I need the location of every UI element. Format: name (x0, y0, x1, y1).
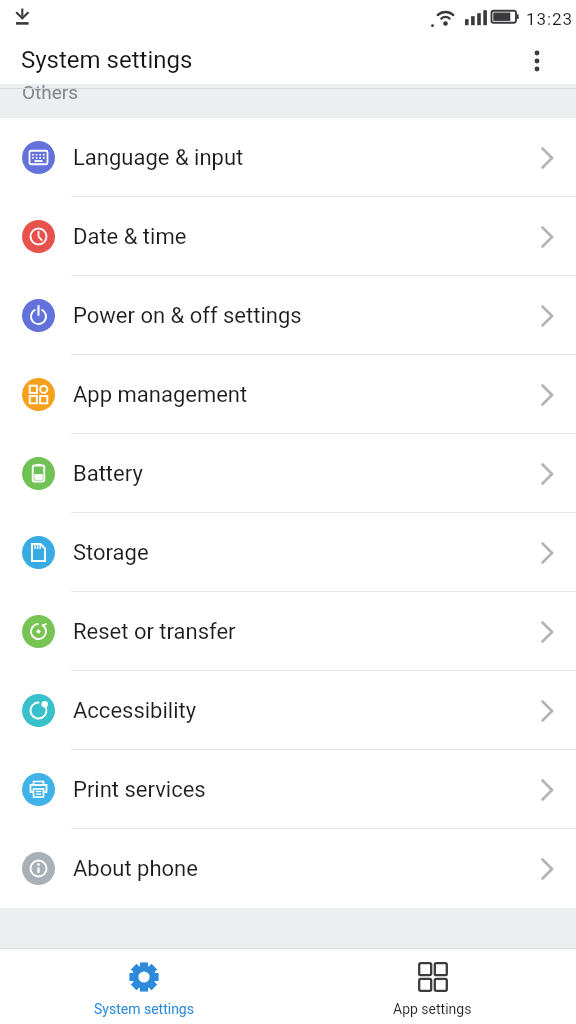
staticText: App management (73, 382, 248, 408)
staticText: Date & time (73, 224, 187, 250)
staticText: Storage (73, 540, 149, 566)
staticText: Others (22, 84, 79, 103)
staticText: System settings (21, 46, 193, 74)
staticText: Battery (73, 461, 143, 487)
staticText: Language & input (73, 145, 244, 171)
staticText: 13:23 (526, 9, 573, 29)
staticText: Power on & off settings (73, 303, 302, 329)
staticText: System settings (94, 1001, 194, 1017)
staticText: Reset or transfer (73, 619, 236, 645)
staticText: Print services (73, 777, 206, 803)
staticText: About phone (73, 856, 198, 882)
staticText: Accessibility (73, 698, 197, 724)
staticText: App settings (393, 1001, 472, 1017)
